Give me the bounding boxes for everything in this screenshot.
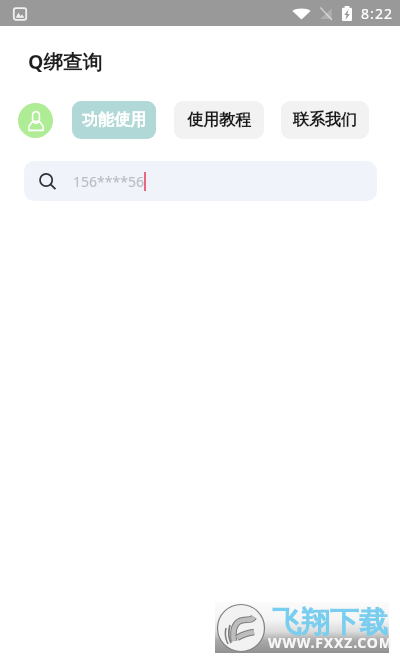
- staticText: 8:22: [361, 4, 394, 23]
- button[interactable]: 联系我们: [281, 101, 369, 139]
- button[interactable]: 使用教程: [174, 101, 264, 139]
- staticText: 功能使用: [82, 110, 146, 130]
- staticText: WWW.FXXZ.COM: [268, 633, 393, 652]
- button[interactable]: 156****56: [24, 161, 377, 201]
- button[interactable]: 功能使用: [72, 101, 156, 139]
- button[interactable]: Profile: [18, 103, 53, 138]
- staticText: Q绑查询: [28, 48, 102, 75]
- staticText: 使用教程: [187, 110, 251, 130]
- staticText: 飞翔下载: [272, 604, 388, 641]
- staticText: 联系我们: [293, 110, 357, 130]
- staticText: 156****56: [73, 172, 144, 191]
